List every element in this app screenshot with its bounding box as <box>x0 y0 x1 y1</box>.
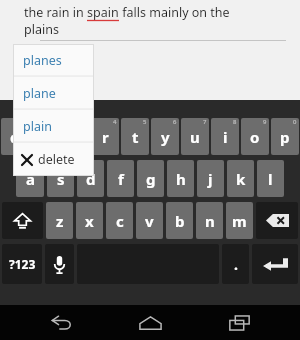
button[interactable]: Back <box>33 305 89 340</box>
staticText: k <box>236 169 246 189</box>
staticText: z <box>56 211 64 231</box>
button[interactable]: f <box>107 160 134 197</box>
button[interactable]: q <box>1 118 29 155</box>
staticText: . <box>234 255 238 274</box>
button[interactable]: . <box>222 244 249 284</box>
button[interactable]: v <box>136 202 163 239</box>
staticText: y <box>161 127 170 147</box>
staticText: q <box>10 127 20 147</box>
staticText: d <box>86 169 96 189</box>
staticText: 0 <box>293 118 297 126</box>
button[interactable]: c <box>106 202 133 239</box>
staticText: t <box>132 127 139 147</box>
button[interactable]: m <box>226 202 253 239</box>
staticText: falls mainly on the <box>119 4 230 21</box>
staticText: 5 <box>143 118 147 126</box>
staticText: h <box>176 169 186 189</box>
staticText: i <box>223 127 228 147</box>
staticText: plane <box>23 85 56 102</box>
button[interactable]: u <box>181 118 209 155</box>
staticText: 8 <box>233 118 237 126</box>
staticText: spain <box>87 4 119 21</box>
staticText: f <box>118 169 124 189</box>
button[interactable]: t <box>121 118 149 155</box>
staticText: ?123 <box>9 256 36 272</box>
button[interactable]: o <box>241 118 269 155</box>
staticText: s <box>57 169 65 189</box>
staticText: planes <box>23 52 62 69</box>
button[interactable]: Recents <box>211 305 267 340</box>
staticText: w <box>39 127 52 147</box>
button[interactable]: l <box>257 160 284 197</box>
button[interactable]: j <box>197 160 224 197</box>
staticText: g <box>146 169 156 189</box>
button[interactable]: x <box>76 202 103 239</box>
staticText: r <box>102 127 109 147</box>
button[interactable]: w <box>31 118 59 155</box>
staticText: b <box>175 211 185 231</box>
staticText: 6 <box>173 118 177 126</box>
staticText: 4 <box>113 118 117 126</box>
staticText: the rain in <box>24 4 87 21</box>
button[interactable]: plain <box>13 110 94 143</box>
staticText: l <box>268 169 273 189</box>
button[interactable]: k <box>227 160 254 197</box>
staticText: plains <box>24 21 59 38</box>
staticText: n <box>205 211 215 231</box>
button[interactable]: delete <box>13 143 94 176</box>
staticText: x <box>85 211 94 231</box>
staticText: a <box>26 169 35 189</box>
button[interactable]: Enter <box>252 244 298 284</box>
staticText: v <box>145 211 154 231</box>
staticText: m <box>232 211 247 231</box>
staticText: o <box>250 127 260 147</box>
button[interactable]: planes <box>13 44 94 77</box>
button[interactable]: i <box>211 118 239 155</box>
button[interactable]: a <box>16 160 44 197</box>
button[interactable]: n <box>196 202 223 239</box>
staticText: j <box>208 169 213 189</box>
button[interactable]: b <box>166 202 193 239</box>
button[interactable]: z <box>46 202 73 239</box>
button[interactable]: plane <box>13 77 94 110</box>
staticText: c <box>116 211 124 231</box>
button[interactable]: s <box>47 160 74 197</box>
button[interactable]: h <box>167 160 194 197</box>
button[interactable]: ?123 <box>2 244 42 284</box>
staticText: 7 <box>203 118 207 126</box>
button[interactable]: Voice input <box>45 244 74 284</box>
button[interactable]: Backspace <box>256 202 298 239</box>
staticText: e <box>71 127 80 147</box>
button[interactable]: r <box>91 118 119 155</box>
button[interactable]: p <box>271 118 299 155</box>
button[interactable]: Shift <box>2 202 43 239</box>
staticText: delete <box>38 151 75 168</box>
staticText: u <box>190 127 200 147</box>
staticText: plain <box>23 118 52 135</box>
button[interactable]: d <box>77 160 104 197</box>
staticText: p <box>280 127 290 147</box>
button[interactable]: y <box>151 118 179 155</box>
staticText: 1 <box>23 118 27 126</box>
button[interactable]: Home <box>122 305 178 340</box>
staticText: 9 <box>263 118 267 126</box>
button[interactable]: g <box>137 160 164 197</box>
